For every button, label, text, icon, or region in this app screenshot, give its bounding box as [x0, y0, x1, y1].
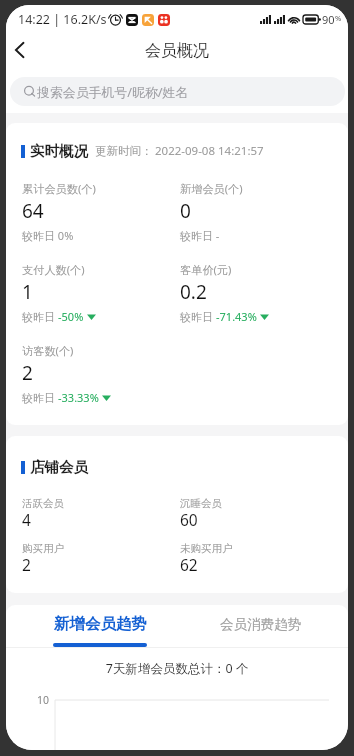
staticText: 较昨日 - — [180, 228, 220, 243]
staticText: 较昨日 0% — [22, 228, 74, 243]
button[interactable]: Search members — [10, 77, 345, 106]
staticText: 2022-09-08 14:21:57 — [155, 143, 264, 159]
staticText: 会员消费趋势 — [220, 616, 301, 633]
staticText: 搜索会员手机号/昵称/姓名 — [37, 83, 189, 101]
staticText: 沉睡会员 — [180, 497, 222, 510]
staticText: 较昨日 — [22, 391, 55, 405]
staticText: 14:22 | 16.2K/s — [18, 11, 107, 28]
button[interactable]: Back — [6, 32, 37, 68]
staticText: 新增会员趋势 — [54, 614, 147, 634]
staticText: 累计会员数(个) — [22, 181, 96, 196]
staticText: 0.2 — [180, 279, 207, 305]
button[interactable]: 会员消费趋势 — [195, 605, 325, 647]
staticText: 购买用户 — [22, 542, 64, 555]
staticText: 支付人数(个) — [22, 262, 85, 277]
staticText: 较昨日 — [22, 310, 55, 324]
button[interactable]: 新增会员趋势 — [6, 605, 195, 647]
staticText: -50% — [58, 309, 84, 324]
staticText: 4 — [22, 509, 31, 530]
staticText: 60 — [180, 509, 198, 530]
staticText: 2 — [22, 360, 33, 386]
staticText: 64 — [22, 198, 44, 224]
staticText: 未购买用户 — [180, 542, 233, 555]
staticText: 2 — [22, 554, 31, 575]
staticText: 实时概况 — [30, 142, 88, 160]
staticText: 10 — [37, 693, 50, 707]
staticText: 访客数(个) — [22, 343, 74, 358]
staticText: 90 — [322, 12, 335, 27]
staticText: 店铺会员 — [30, 458, 88, 476]
staticText: 会员概况 — [145, 41, 209, 61]
staticText: 1 — [22, 279, 33, 305]
staticText: 62 — [180, 554, 198, 575]
staticText: 较昨日 — [180, 310, 213, 324]
staticText: 更新时间： — [95, 144, 153, 158]
staticText: % — [335, 13, 342, 23]
staticText: 客单价(元) — [180, 262, 232, 277]
staticText: 新增会员(个) — [180, 181, 243, 196]
staticText: 0 — [180, 198, 191, 224]
staticText: -33.33% — [58, 390, 99, 405]
staticText: 活跃会员 — [22, 497, 64, 510]
staticText: -71.43% — [216, 309, 257, 324]
staticText: 7天新增会员数总计：0 个 — [6, 660, 348, 677]
